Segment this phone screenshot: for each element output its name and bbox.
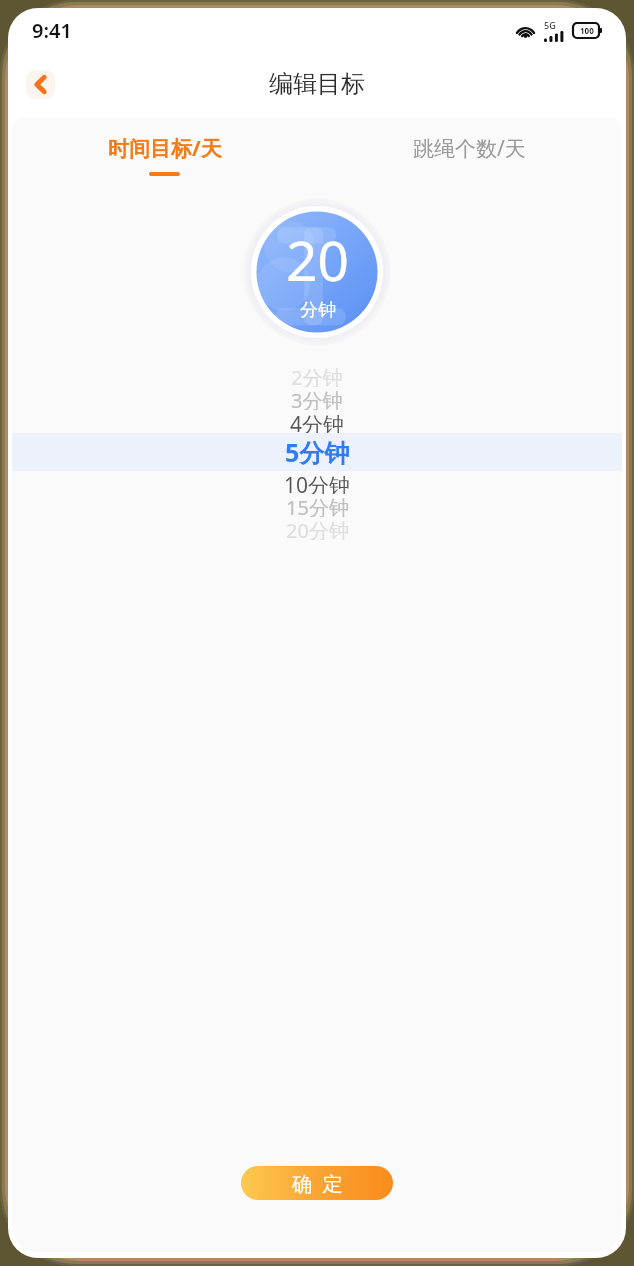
staticText: 15分钟 [286, 494, 349, 517]
staticText: 3分钟 [291, 387, 343, 410]
button[interactable]: 15分钟 [12, 494, 622, 517]
button[interactable]: 5分钟 [12, 433, 622, 471]
staticText: 9:41 [32, 17, 72, 44]
staticText: 跳绳个数/天 [413, 134, 526, 163]
button[interactable]: Back [26, 70, 55, 99]
button[interactable]: 10分钟 [12, 471, 622, 494]
button[interactable]: 20分钟 [12, 517, 622, 540]
staticText: 确 定 [292, 1170, 343, 1197]
button[interactable]: 2分钟 [12, 364, 622, 387]
staticText: 10分钟 [284, 471, 351, 494]
staticText: 4分钟 [290, 410, 345, 433]
staticText: 5G [544, 19, 556, 31]
button[interactable]: 4分钟 [12, 410, 622, 433]
button[interactable]: 跳绳个数/天 [317, 134, 622, 176]
staticText: 编辑目标 [269, 69, 365, 99]
staticText: 20分钟 [286, 517, 349, 540]
button[interactable]: 时间目标/天 [12, 134, 317, 176]
staticText: 20 [286, 222, 349, 297]
button[interactable]: 确 定 [241, 1166, 393, 1200]
staticText: 2分钟 [291, 364, 343, 387]
staticText: 100 [580, 25, 594, 36]
button[interactable]: 3分钟 [12, 387, 622, 410]
staticText: 时间目标/天 [108, 134, 222, 163]
staticText: 5分钟 [285, 435, 350, 469]
staticText: 分钟 [300, 299, 336, 322]
